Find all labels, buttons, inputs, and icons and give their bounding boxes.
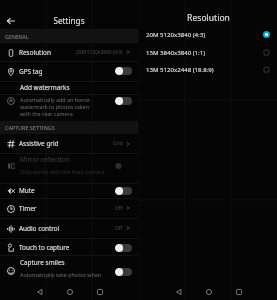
button[interactable]: Toggle — [115, 268, 132, 276]
button[interactable]: Toggle — [115, 162, 132, 170]
button[interactable]: 15M 3840x3840 (1:1) — [139, 44, 277, 60]
staticText: Capture smiles — [20, 258, 65, 267]
button[interactable]: Assistive grid — [0, 134, 138, 153]
staticText: Audio control — [19, 224, 115, 233]
button[interactable]: Recent apps — [96, 288, 103, 295]
button[interactable]: Recent apps — [235, 288, 242, 295]
staticText: 20M 5120x3840 (4:3) — [146, 30, 206, 38]
staticText: Assistive grid — [19, 139, 113, 148]
staticText: Touch to capture — [19, 243, 115, 252]
button[interactable]: Back — [175, 288, 182, 295]
button[interactable]: Home — [66, 288, 73, 295]
button[interactable]: Add watermarks — [0, 81, 138, 94]
staticText: Mirror reflection — [20, 155, 70, 164]
button[interactable] — [0, 255, 138, 283]
button[interactable]: Mute — [0, 183, 138, 198]
staticText: Resolution — [19, 48, 76, 57]
staticText: 15M 3840x3840 (1:1) — [146, 48, 206, 56]
button[interactable] — [0, 94, 138, 120]
button[interactable]: Timer — [0, 198, 138, 218]
staticText: Resolution — [187, 12, 230, 24]
button[interactable]: Toggle — [115, 67, 132, 75]
staticText: Only works with the front camera — [20, 168, 105, 175]
button[interactable]: Toggle — [115, 97, 132, 105]
staticText: CAPTURE SETTINGS — [5, 124, 55, 131]
button[interactable] — [0, 153, 138, 183]
button[interactable]: GPS tag — [0, 61, 138, 81]
button[interactable]: 13M 5120x2448 (18.8:9) — [139, 61, 277, 77]
staticText: GPS tag — [19, 67, 115, 76]
staticText: Off — [115, 225, 123, 232]
staticText: Automatically take photos when — [20, 271, 102, 278]
button[interactable]: Back — [36, 288, 43, 295]
staticText: 20M 5120x3840 (4:3) — [76, 49, 123, 56]
staticText: Off — [115, 205, 123, 212]
button[interactable]: Back — [2, 12, 19, 29]
button[interactable]: Audio control — [0, 218, 138, 238]
button[interactable]: Toggle — [115, 244, 132, 252]
staticText: Add watermarks — [20, 83, 70, 92]
button[interactable]: Touch to capture — [0, 238, 138, 257]
button[interactable]: 20M 5120x3840 (4:3) — [139, 26, 277, 42]
button[interactable]: Toggle — [115, 187, 132, 195]
staticText: Grid — [113, 140, 123, 147]
staticText: Mute — [19, 186, 115, 195]
staticText: Settings — [53, 15, 85, 26]
staticText: Automatically add an honor watermark to … — [20, 96, 98, 117]
staticText: Timer — [19, 204, 115, 213]
staticText: 13M 5120x2448 (18.8:9) — [146, 65, 214, 73]
button[interactable]: Resolution — [0, 43, 138, 61]
staticText: GENERAL — [5, 33, 29, 40]
button[interactable]: Home — [205, 288, 212, 295]
